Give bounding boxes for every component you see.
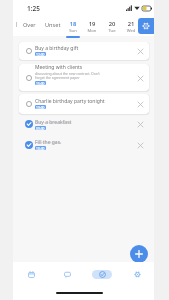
staticText: 10:30 <box>36 146 45 150</box>
button[interactable]: Delete task <box>134 45 146 57</box>
button[interactable]: Toggle complete <box>19 42 149 60</box>
staticText: Buy a birthday gift <box>35 45 79 52</box>
staticText: 18 <box>65 20 81 28</box>
button[interactable]: Calendar <box>13 262 49 286</box>
button[interactable]: Toggle complete <box>19 94 149 114</box>
staticText: Charlie birthday party tonight <box>35 98 105 105</box>
staticText: 1:25 <box>27 4 40 13</box>
button[interactable]: Delete task <box>134 139 146 151</box>
button[interactable]: 19 <box>84 20 100 34</box>
staticText: 21 <box>123 20 139 28</box>
staticText: Fill the gas. <box>35 139 62 146</box>
staticText: 09:30 <box>36 126 45 130</box>
button[interactable]: Tasks <box>84 262 119 286</box>
button[interactable]: Unset <box>45 21 61 29</box>
button[interactable]: 20 <box>104 20 120 34</box>
staticText: discussing about the new contract. Don't… <box>35 71 102 80</box>
button[interactable]: Toggle complete <box>19 136 149 154</box>
staticText: Meeting with clients <box>35 64 83 71</box>
staticText: Unset <box>45 21 61 29</box>
staticText: 19:00 <box>36 105 45 109</box>
staticText: Buy a breakfast <box>35 119 72 126</box>
staticText: Tue <box>104 28 120 34</box>
staticText: 20 <box>104 20 120 28</box>
staticText: | <box>15 20 19 28</box>
button[interactable]: Toggle complete <box>23 45 35 57</box>
button[interactable]: Toggle complete <box>23 139 35 151</box>
button[interactable]: Toggle complete <box>23 72 35 84</box>
button[interactable]: Delete task <box>134 118 146 130</box>
button[interactable]: | <box>15 20 19 30</box>
button[interactable]: Toggle complete <box>19 115 149 133</box>
button[interactable]: Delete task <box>134 72 146 84</box>
button[interactable]: Messages <box>49 262 84 286</box>
button[interactable]: Toggle complete <box>19 64 149 91</box>
button[interactable]: 21 <box>123 20 139 34</box>
staticText: 15:00 <box>36 81 45 85</box>
button[interactable]: Settings <box>119 262 154 286</box>
staticText: 12:00 <box>36 52 45 56</box>
button[interactable]: Over <box>23 21 36 29</box>
button[interactable]: Toggle complete <box>23 118 35 130</box>
button[interactable]: 18 <box>65 20 81 38</box>
button[interactable]: Delete task <box>134 98 146 110</box>
staticText: Sun <box>65 28 81 34</box>
staticText: Over <box>23 21 36 29</box>
staticText: Wed <box>123 28 139 34</box>
button[interactable]: Toggle complete <box>23 98 35 110</box>
button[interactable]: Add task <box>130 245 148 263</box>
staticText: Mon <box>84 28 100 34</box>
staticText: 19 <box>84 20 100 28</box>
button[interactable]: Settings <box>138 18 154 34</box>
